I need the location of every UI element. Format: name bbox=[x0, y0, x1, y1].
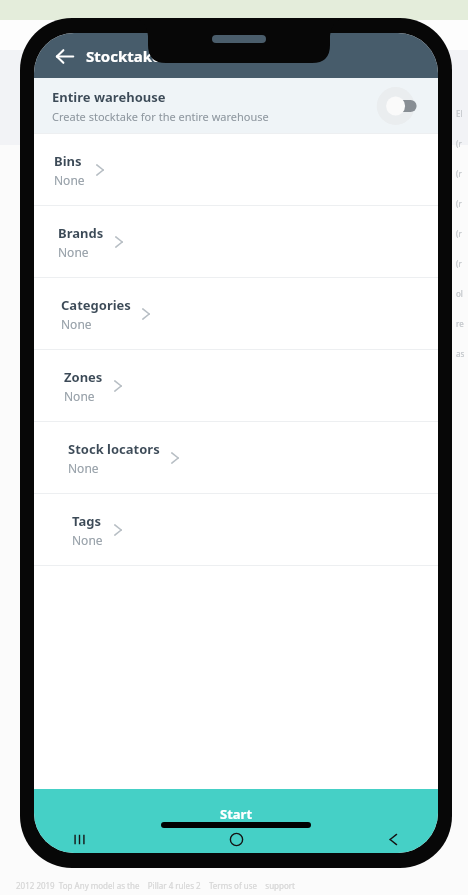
staticText: ol bbox=[456, 288, 463, 299]
staticText: (r bbox=[456, 168, 462, 179]
staticText: Categories bbox=[61, 296, 131, 314]
staticText: Tags bbox=[72, 512, 101, 530]
staticText: None bbox=[61, 316, 92, 332]
button[interactable]: Zones bbox=[34, 350, 438, 421]
button[interactable]: Brands bbox=[34, 206, 438, 277]
staticText: None bbox=[68, 460, 99, 476]
staticText: Entire warehouse bbox=[52, 88, 166, 106]
staticText: as bbox=[456, 348, 465, 359]
staticText: Stocktake creation bbox=[86, 46, 228, 66]
staticText: (r bbox=[456, 258, 462, 269]
button[interactable]: Back bbox=[382, 828, 404, 850]
button[interactable]: Bins bbox=[34, 134, 438, 205]
staticText: Zones bbox=[64, 368, 103, 386]
staticText: Create stocktake for the entire warehous… bbox=[52, 109, 269, 124]
staticText: None bbox=[54, 172, 85, 188]
staticText: (r bbox=[456, 138, 462, 149]
button[interactable]: Categories bbox=[34, 278, 438, 349]
button[interactable]: Start bbox=[34, 789, 438, 853]
staticText: Bins bbox=[54, 152, 82, 170]
staticText: El bbox=[456, 108, 463, 119]
button[interactable]: Recent apps bbox=[68, 828, 90, 850]
button[interactable]: Stock locators bbox=[34, 422, 438, 493]
staticText: None bbox=[72, 532, 103, 548]
staticText: re bbox=[456, 318, 464, 329]
staticText: None bbox=[58, 244, 89, 260]
staticText: None bbox=[64, 388, 95, 404]
button[interactable]: Back bbox=[46, 38, 82, 74]
staticText: Brands bbox=[58, 224, 104, 242]
staticText: 2012 2019 Top Any model as the Pillar 4 … bbox=[16, 880, 295, 891]
staticText: Start bbox=[220, 805, 253, 823]
button[interactable]: Tags bbox=[34, 494, 438, 565]
staticText: Stock locators bbox=[68, 440, 160, 458]
button[interactable]: Entire warehouse bbox=[34, 78, 438, 133]
staticText: (r bbox=[456, 228, 462, 239]
button[interactable]: Home bbox=[225, 828, 247, 850]
staticText: (r bbox=[456, 198, 462, 209]
button[interactable]: Entire warehouse toggle bbox=[374, 85, 428, 127]
